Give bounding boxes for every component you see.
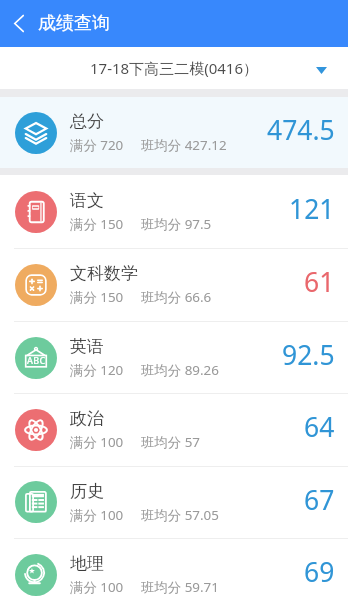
staticText: 总分 <box>70 111 104 132</box>
staticText: 班均分 89.26 <box>141 361 219 379</box>
staticText: 满分 100 <box>70 578 124 596</box>
staticText: 文科数学 <box>70 263 138 284</box>
staticText: 政治 <box>70 408 104 429</box>
staticText: 17-18下高三二模(0416） <box>90 58 258 78</box>
staticText: 满分 100 <box>70 506 124 524</box>
button[interactable]: 历史 <box>0 466 348 538</box>
staticText: 满分 150 <box>70 288 124 306</box>
staticText: 成绩查询 <box>38 12 110 35</box>
staticText: 64 <box>304 409 335 445</box>
button[interactable]: Select exam <box>315 64 327 76</box>
staticText: 班均分 66.6 <box>141 288 212 306</box>
button[interactable]: 17-18下高三二模(0416） <box>0 47 348 89</box>
staticText: 历史 <box>70 481 104 502</box>
button[interactable]: 文科数学 <box>0 248 348 321</box>
staticText: 班均分 57 <box>141 433 200 451</box>
button[interactable]: Back <box>0 0 38 47</box>
button[interactable]: ABC <box>0 321 348 394</box>
staticText: 121 <box>289 191 335 227</box>
staticText: 满分 100 <box>70 433 124 451</box>
button[interactable]: 语文 <box>0 175 348 248</box>
staticText: 班均分 427.12 <box>141 136 227 154</box>
staticText: ABC <box>27 354 46 366</box>
staticText: 语文 <box>70 190 104 211</box>
staticText: 满分 720 <box>70 136 124 154</box>
staticText: 61 <box>304 264 335 300</box>
staticText: 班均分 97.5 <box>141 215 212 233</box>
button[interactable]: 政治 <box>0 393 348 466</box>
staticText: 地理 <box>70 553 104 574</box>
staticText: 班均分 57.05 <box>141 506 219 524</box>
staticText: 69 <box>304 554 335 590</box>
staticText: 满分 120 <box>70 361 124 379</box>
button[interactable]: 总分 <box>0 97 348 168</box>
staticText: 英语 <box>70 336 104 357</box>
staticText: 67 <box>304 482 335 518</box>
button[interactable]: 地理 <box>0 538 348 600</box>
staticText: 班均分 59.71 <box>141 578 219 596</box>
staticText: 92.5 <box>282 337 335 373</box>
staticText: 474.5 <box>267 112 335 148</box>
staticText: 满分 150 <box>70 215 124 233</box>
